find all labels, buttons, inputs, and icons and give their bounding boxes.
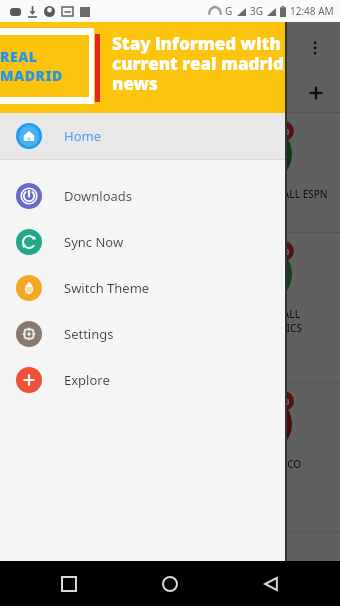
button[interactable]: Home [0,113,287,159]
button[interactable]: Add [303,80,329,106]
button[interactable]: 20 [0,113,340,233]
staticText: Stay informed with current real madrid n… [112,32,297,95]
button[interactable]: Sync Now [0,219,287,265]
staticText: Switch Theme [64,279,150,297]
staticText: Explore [64,371,110,389]
staticText: Home [64,127,101,145]
button[interactable]: REAL MADRID [0,22,287,113]
staticText: Downloads [64,187,133,205]
button[interactable]: Downloads [0,173,287,219]
staticText: 40 [279,395,290,407]
staticText: STATISTICS [250,321,302,335]
staticText: FOOTBALL [250,307,301,321]
staticText: 3G [250,4,263,18]
staticText: 20 [279,125,290,137]
button[interactable]: Explore [0,357,287,403]
button[interactable]: 30 [0,233,340,383]
staticText: 30 [279,245,290,257]
staticText: FOOTBALL ESPN [250,187,328,201]
staticText: 12:48 AM [290,4,334,18]
button[interactable]: More options [302,35,328,61]
staticText: Settings [64,325,114,343]
button[interactable]: Back [251,564,291,604]
button[interactable]: Home [150,564,190,604]
staticText: MARCA.CO [250,457,302,471]
button[interactable]: 40 [0,383,340,533]
staticText: Sync Now [64,233,124,251]
button[interactable]: Recent apps [49,564,89,604]
button[interactable]: Settings [0,311,287,357]
staticText: REAL MADRID [0,47,94,85]
staticText: G [225,4,233,18]
button[interactable]: Switch Theme [0,265,287,311]
